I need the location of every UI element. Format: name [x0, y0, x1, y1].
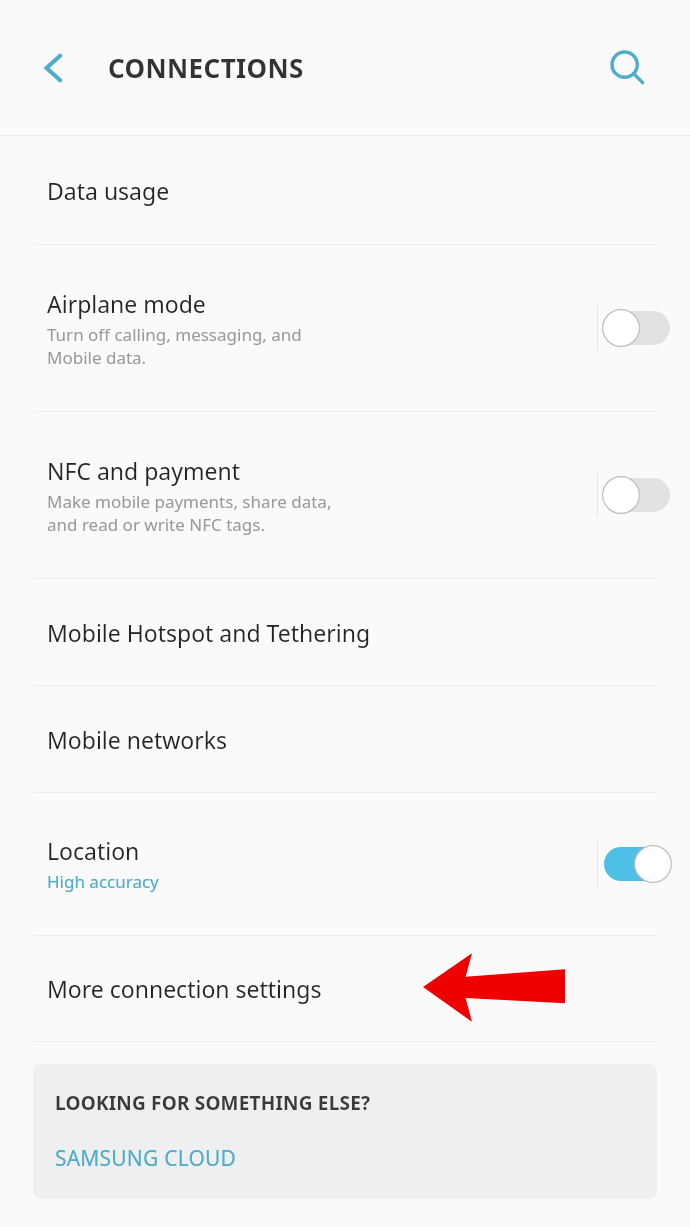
- staticText: Location: [47, 835, 140, 866]
- button[interactable]: Location: [0, 793, 597, 935]
- button[interactable]: Back: [22, 36, 86, 100]
- button[interactable]: Data usage: [0, 136, 690, 244]
- staticText: LOOKING FOR SOMETHING ELSE?: [55, 1090, 371, 1116]
- staticText: SAMSUNG CLOUD: [55, 1144, 237, 1173]
- staticText: CONNECTIONS: [108, 50, 304, 85]
- button[interactable]: LOOKING FOR SOMETHING ELSE?: [33, 1064, 657, 1199]
- button[interactable]: Mobile Hotspot and Tethering: [0, 579, 690, 685]
- staticText: NFC and payment: [47, 455, 240, 486]
- staticText: Make mobile payments, share data, and re…: [47, 490, 332, 536]
- staticText: Mobile networks: [47, 724, 228, 755]
- button[interactable]: Airplane mode: [0, 245, 597, 411]
- button[interactable]: Airplane mode: [598, 306, 676, 350]
- staticText: Mobile Hotspot and Tethering: [47, 617, 371, 648]
- button[interactable]: NFC and payment: [598, 473, 676, 517]
- staticText: Data usage: [47, 175, 170, 206]
- staticText: Airplane mode: [47, 288, 206, 319]
- staticText: Turn off calling, messaging, and Mobile …: [47, 323, 302, 369]
- button[interactable]: NFC and payment: [0, 412, 597, 578]
- button[interactable]: Mobile networks: [0, 686, 690, 792]
- staticText: More connection settings: [47, 973, 322, 1004]
- button[interactable]: Search: [598, 38, 658, 98]
- staticText: High accuracy: [47, 870, 159, 893]
- button[interactable]: More connection settings: [0, 936, 690, 1041]
- button[interactable]: Location: [598, 842, 676, 886]
